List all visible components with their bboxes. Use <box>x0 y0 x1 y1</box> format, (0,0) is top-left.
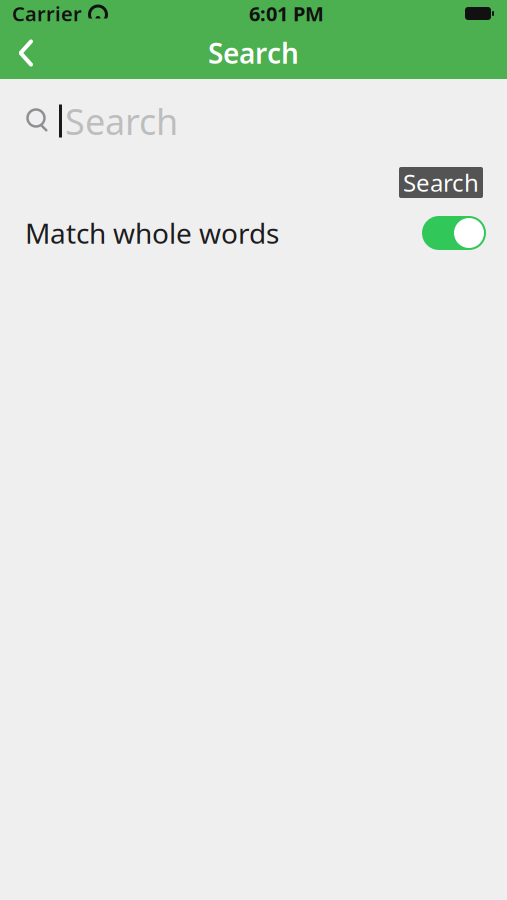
staticText: Match whole words <box>25 214 279 252</box>
button[interactable]: Search <box>399 167 483 198</box>
staticText: Search <box>403 167 479 198</box>
staticText: Search <box>65 97 178 145</box>
button[interactable]: Back <box>0 27 52 79</box>
staticText: 6:01 PM <box>249 0 324 27</box>
staticText: Search <box>208 34 299 72</box>
button[interactable]: Match whole words <box>422 216 486 250</box>
staticText: Carrier <box>12 0 82 27</box>
